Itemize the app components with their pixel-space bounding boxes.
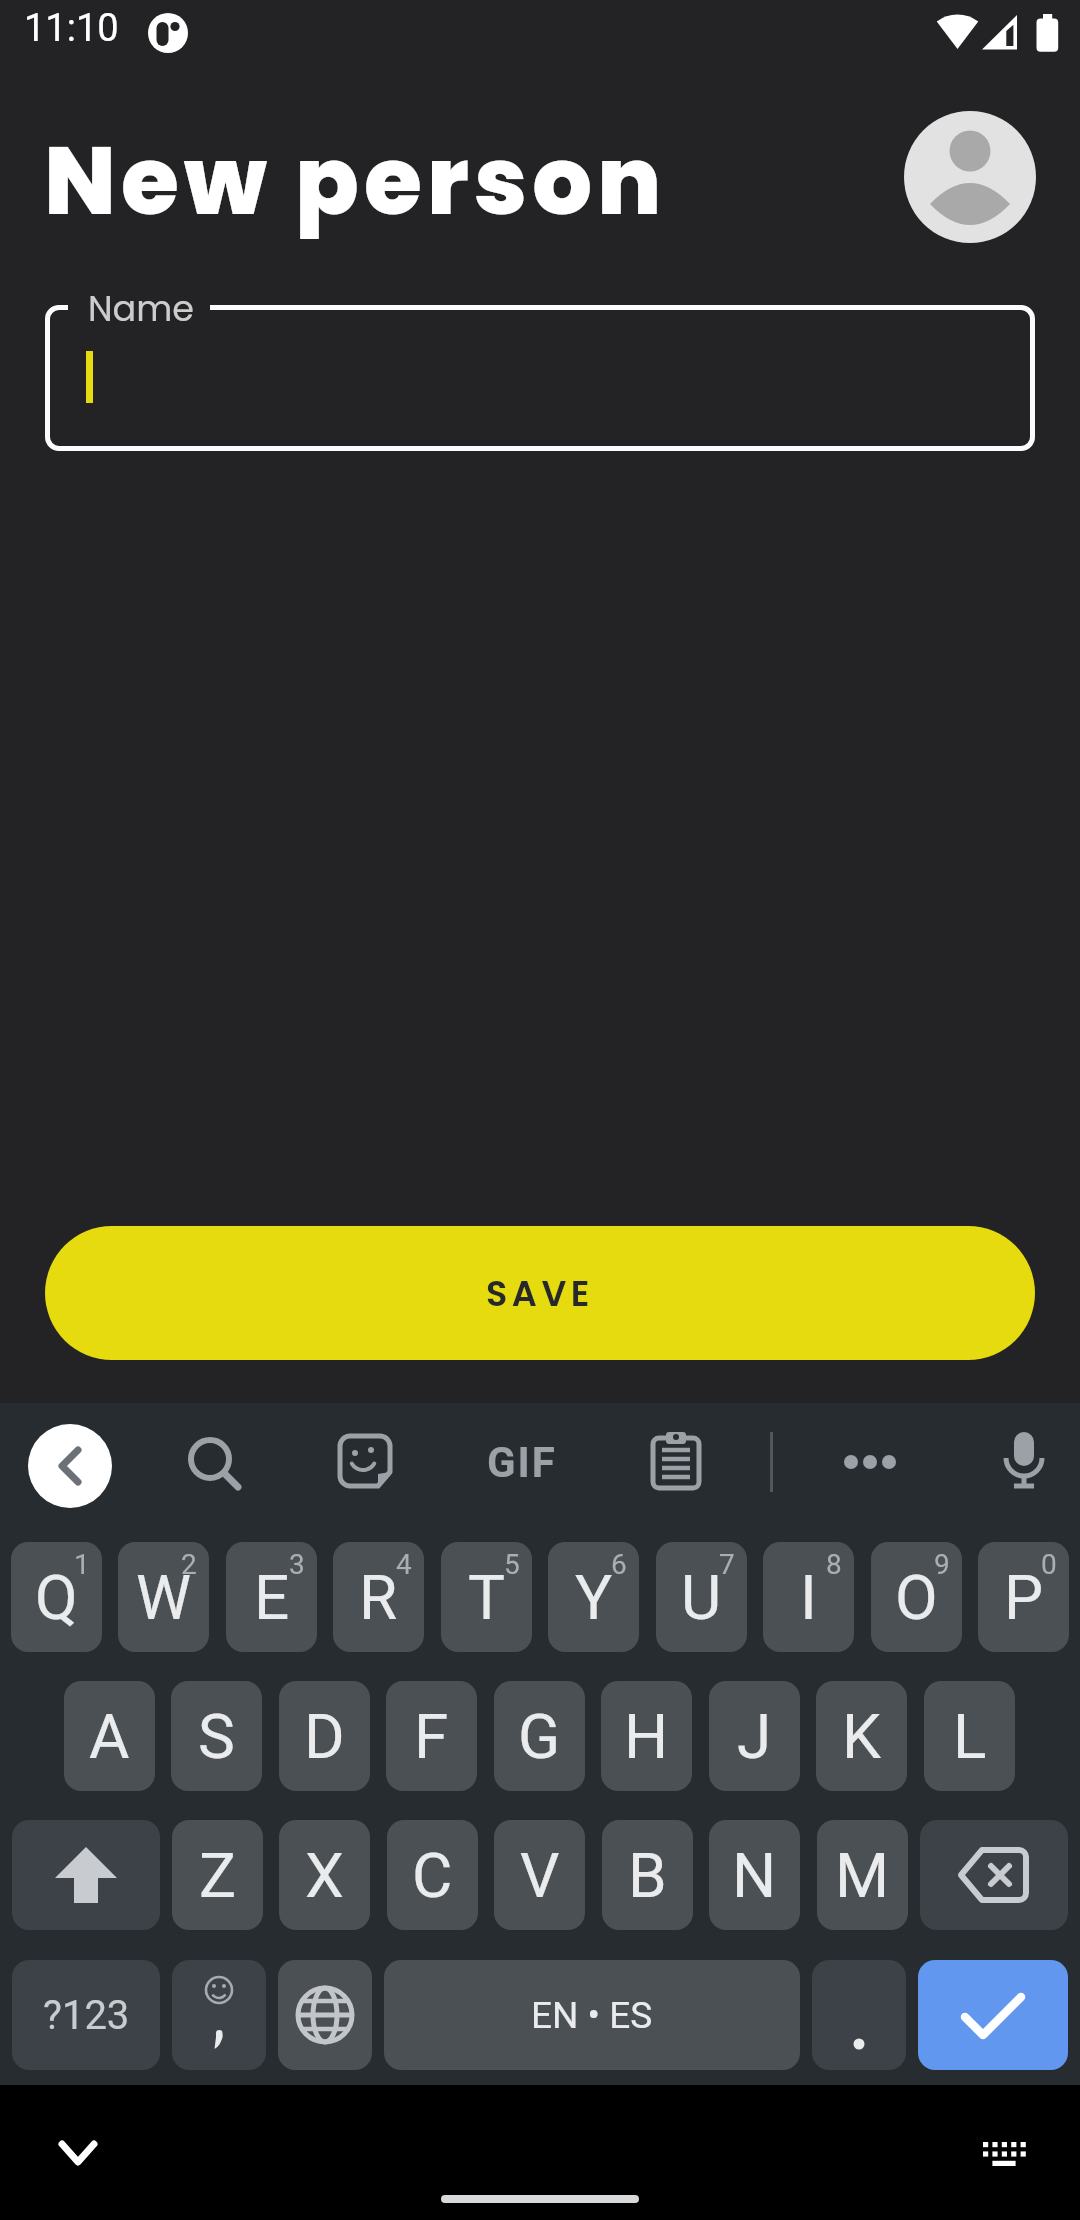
- button[interactable]: Z: [172, 1820, 263, 1930]
- staticText: EN • ES: [531, 1994, 653, 2037]
- button[interactable]: [653, 1432, 699, 1488]
- button[interactable]: [812, 1960, 906, 2070]
- button[interactable]: W: [118, 1542, 209, 1652]
- staticText: Z: [199, 1839, 237, 1912]
- staticText: Y: [575, 1561, 613, 1634]
- staticText: C: [412, 1839, 453, 1912]
- button[interactable]: K: [816, 1681, 907, 1791]
- staticText: 3: [289, 1548, 305, 1581]
- button[interactable]: D: [279, 1681, 370, 1791]
- button[interactable]: M: [817, 1820, 908, 1930]
- staticText: T: [468, 1561, 505, 1634]
- button[interactable]: [172, 1960, 266, 2070]
- button[interactable]: EN • ES: [384, 1960, 800, 2070]
- button[interactable]: [340, 1436, 392, 1488]
- staticText: R: [359, 1561, 398, 1634]
- button[interactable]: T: [441, 1542, 532, 1652]
- staticText: N: [732, 1839, 777, 1912]
- staticText: 2: [181, 1548, 197, 1581]
- button[interactable]: G: [494, 1681, 585, 1791]
- staticText: Q: [35, 1561, 78, 1634]
- staticText: GIF: [487, 1438, 557, 1487]
- staticText: M: [835, 1839, 890, 1912]
- button[interactable]: [278, 1960, 372, 2070]
- staticText: X: [305, 1839, 344, 1912]
- button[interactable]: X: [279, 1820, 370, 1930]
- staticText: F: [414, 1700, 449, 1773]
- staticText: 5: [504, 1548, 520, 1581]
- staticText: 11:10: [24, 6, 119, 51]
- button[interactable]: [12, 1820, 160, 1930]
- staticText: K: [842, 1700, 881, 1773]
- staticText: Name: [88, 284, 195, 333]
- staticText: SAVE: [486, 1269, 594, 1318]
- button[interactable]: R: [333, 1542, 424, 1652]
- staticText: 7: [719, 1548, 735, 1581]
- button[interactable]: H: [601, 1681, 692, 1791]
- button[interactable]: A: [64, 1681, 155, 1791]
- button[interactable]: P: [978, 1542, 1069, 1652]
- button[interactable]: [904, 111, 1036, 243]
- button[interactable]: [838, 1448, 902, 1476]
- button[interactable]: E: [226, 1542, 317, 1652]
- button[interactable]: F: [386, 1681, 477, 1791]
- button[interactable]: L: [924, 1681, 1015, 1791]
- button[interactable]: B: [602, 1820, 693, 1930]
- button[interactable]: [983, 2142, 1026, 2167]
- staticText: S: [198, 1700, 235, 1773]
- staticText: B: [628, 1839, 667, 1912]
- staticText: P: [1004, 1561, 1044, 1634]
- staticText: G: [518, 1700, 561, 1773]
- staticText: 8: [826, 1548, 842, 1581]
- button[interactable]: N: [709, 1820, 800, 1930]
- button[interactable]: [59, 2139, 97, 2169]
- staticText: O: [895, 1561, 938, 1634]
- button[interactable]: SAVE: [45, 1226, 1035, 1360]
- staticText: A: [89, 1700, 130, 1773]
- button[interactable]: J: [709, 1681, 800, 1791]
- staticText: J: [737, 1700, 772, 1773]
- button[interactable]: Y: [548, 1542, 639, 1652]
- button[interactable]: I: [763, 1542, 854, 1652]
- staticText: ?123: [43, 1992, 130, 2039]
- staticText: 9: [934, 1548, 950, 1581]
- staticText: 6: [611, 1548, 627, 1581]
- staticText: 4: [396, 1548, 412, 1581]
- button[interactable]: [920, 1820, 1068, 1930]
- button[interactable]: C: [387, 1820, 478, 1930]
- staticText: New person: [44, 115, 667, 247]
- staticText: E: [254, 1561, 290, 1634]
- staticText: H: [624, 1700, 669, 1773]
- button[interactable]: [45, 305, 1035, 451]
- staticText: I: [800, 1561, 817, 1634]
- button[interactable]: Q: [11, 1542, 102, 1652]
- button[interactable]: GIF: [487, 1438, 557, 1487]
- button[interactable]: U: [656, 1542, 747, 1652]
- button[interactable]: V: [494, 1820, 585, 1930]
- button[interactable]: [185, 1434, 243, 1492]
- staticText: L: [953, 1700, 987, 1773]
- button[interactable]: S: [171, 1681, 262, 1791]
- button[interactable]: ?123: [12, 1960, 160, 2070]
- staticText: W: [136, 1561, 192, 1634]
- staticText: 1: [74, 1548, 90, 1581]
- staticText: D: [304, 1700, 345, 1773]
- button[interactable]: O: [871, 1542, 962, 1652]
- button[interactable]: [918, 1960, 1068, 2070]
- staticText: U: [681, 1561, 722, 1634]
- button[interactable]: [28, 1424, 112, 1508]
- staticText: V: [520, 1839, 560, 1912]
- button[interactable]: [1000, 1432, 1048, 1492]
- staticText: 0: [1041, 1548, 1057, 1581]
